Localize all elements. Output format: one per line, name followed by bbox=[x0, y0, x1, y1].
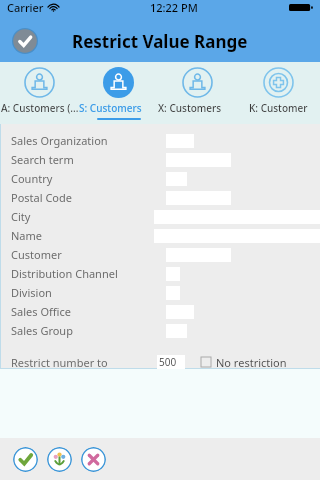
staticText: Postal Code bbox=[11, 190, 72, 205]
staticText: X: Customers b... bbox=[158, 101, 237, 115]
button[interactable]: S: Customers p... bbox=[79, 62, 158, 124]
staticText: No restriction bbox=[216, 355, 287, 369]
button[interactable]: Sales Group bbox=[0, 322, 320, 339]
button[interactable]: Accept bbox=[13, 447, 38, 472]
button[interactable]: X: Customers b... bbox=[158, 62, 237, 124]
staticText: Sales Office bbox=[11, 304, 71, 319]
button[interactable]: Postal Code bbox=[0, 189, 320, 206]
staticText: Sales Organization bbox=[11, 133, 108, 148]
staticText: City bbox=[11, 209, 31, 224]
staticText: Customer bbox=[11, 247, 62, 262]
staticText: K: Customer bbox=[249, 101, 308, 115]
button[interactable]: Sales Office bbox=[0, 303, 320, 320]
button[interactable]: Division bbox=[0, 284, 320, 301]
button[interactable]: City bbox=[0, 208, 320, 225]
staticText: 500 bbox=[159, 355, 177, 369]
button[interactable]: Confirm bbox=[12, 28, 38, 54]
staticText: Name bbox=[11, 228, 43, 243]
staticText: Distribution Channel bbox=[11, 266, 118, 281]
staticText: Division bbox=[11, 285, 52, 300]
staticText: Restrict Value Range bbox=[72, 30, 248, 53]
button[interactable]: K: Customer bbox=[237, 62, 320, 124]
button[interactable]: Distribution Channel bbox=[0, 265, 320, 282]
button[interactable]: No restriction bbox=[201, 355, 287, 369]
button[interactable]: Cancel bbox=[81, 447, 106, 472]
staticText: Country bbox=[11, 171, 53, 186]
button[interactable]: Name bbox=[0, 227, 320, 244]
button[interactable]: Search term bbox=[0, 151, 320, 168]
button[interactable]: Country bbox=[0, 170, 320, 187]
staticText: Restrict number to bbox=[11, 355, 108, 369]
staticText: S: Customers p... bbox=[79, 101, 158, 115]
button[interactable]: Add to favorites bbox=[47, 447, 72, 472]
staticText: Sales Group bbox=[11, 323, 73, 338]
button[interactable]: Sales Organization bbox=[0, 132, 320, 149]
staticText: Carrier bbox=[7, 0, 44, 15]
button[interactable]: A: Customers (... bbox=[0, 62, 79, 124]
button[interactable]: 500 bbox=[157, 355, 185, 369]
staticText: 12:22 PM bbox=[150, 0, 198, 15]
staticText: A: Customers (... bbox=[1, 101, 79, 115]
button[interactable]: Customer bbox=[0, 246, 320, 263]
staticText: Search term bbox=[11, 152, 74, 167]
